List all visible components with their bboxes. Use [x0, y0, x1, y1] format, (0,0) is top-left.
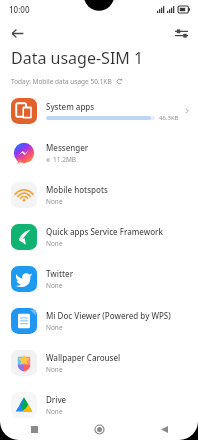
button[interactable]: Mobile hotspots — [0, 174, 198, 216]
button[interactable]: Quick apps Service Framework — [0, 216, 198, 258]
staticText: 10:00 — [9, 4, 30, 15]
button[interactable]: Drive — [0, 384, 198, 426]
staticText: Mobile hotspots — [46, 184, 108, 195]
button[interactable]: Home — [89, 419, 109, 439]
staticText: 11.2MB — [53, 155, 77, 164]
staticText: Today: Mobile data usage 50.1KB — [11, 77, 112, 86]
staticText: Data usage-SIM 1 — [11, 47, 144, 69]
staticText: Drive — [46, 394, 67, 405]
staticText: System apps — [46, 101, 95, 112]
staticText: None — [46, 197, 63, 206]
staticText: 46.3KB — [159, 114, 179, 122]
staticText: Twitter — [46, 268, 74, 279]
staticText: Quick apps Service Framework — [46, 226, 163, 237]
button[interactable]: Mi Doc Viewer (Powered by WPS) — [0, 300, 198, 342]
button[interactable]: Back — [154, 419, 174, 439]
staticText: None — [46, 407, 63, 416]
staticText: Messenger — [46, 142, 89, 153]
staticText: Mi Doc Viewer (Powered by WPS) — [46, 310, 171, 321]
button[interactable]: System apps — [0, 90, 198, 132]
button[interactable]: Data usage settings — [169, 21, 193, 45]
staticText: None — [46, 239, 63, 248]
staticText: Wallpaper Carousel — [46, 352, 121, 363]
button[interactable]: Recent apps — [24, 419, 44, 439]
staticText: None — [46, 365, 63, 374]
button[interactable]: Wallpaper Carousel — [0, 342, 198, 384]
button[interactable]: Twitter — [0, 258, 198, 300]
button[interactable]: Messenger — [0, 132, 198, 174]
staticText: None — [46, 323, 63, 332]
staticText: None — [46, 281, 63, 290]
button[interactable]: Back — [5, 21, 29, 45]
